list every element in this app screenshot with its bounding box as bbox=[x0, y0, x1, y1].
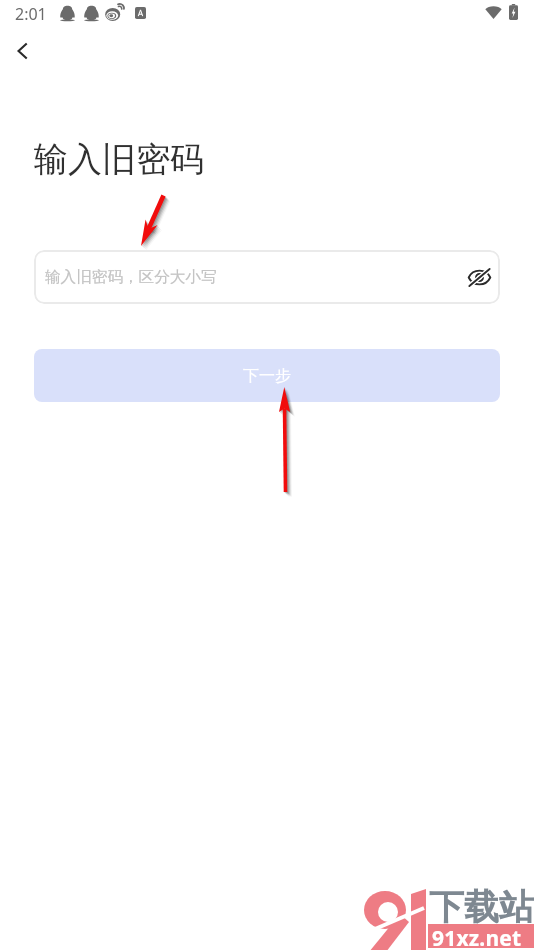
staticText: 91xz.net bbox=[432, 924, 522, 950]
button[interactable]: 输入旧密码，区分大小写 bbox=[34, 250, 500, 304]
staticText: 下载站 bbox=[429, 885, 534, 929]
button[interactable]: Back bbox=[0, 30, 42, 72]
staticText: 2:01 bbox=[15, 3, 47, 25]
staticText: 输入旧密码 bbox=[34, 138, 204, 181]
staticText: 下一步 bbox=[243, 366, 291, 386]
button[interactable]: 下一步 bbox=[34, 349, 500, 402]
staticText: 输入旧密码，区分大小写 bbox=[45, 267, 217, 287]
button[interactable]: Toggle password visibility bbox=[464, 262, 494, 292]
